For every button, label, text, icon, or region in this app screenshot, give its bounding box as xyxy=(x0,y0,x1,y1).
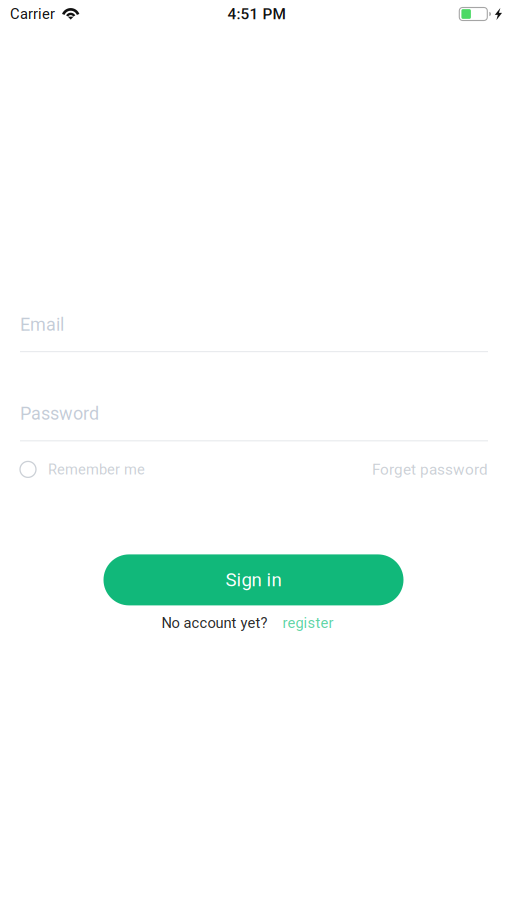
button[interactable]: Remember me xyxy=(20,454,145,484)
staticText: No account yet? xyxy=(161,614,267,632)
staticText: 4:51 PM xyxy=(227,5,285,23)
staticText: register xyxy=(282,614,333,632)
staticText: Carrier xyxy=(10,5,55,23)
staticText: Password xyxy=(20,403,99,424)
staticText: Sign in xyxy=(225,569,281,591)
button[interactable]: Forget password xyxy=(372,454,488,484)
button[interactable]: Sign in xyxy=(103,554,403,605)
staticText: Remember me xyxy=(48,461,145,478)
staticText: Forget password xyxy=(372,460,488,478)
staticText: Email xyxy=(20,314,64,335)
button[interactable]: register xyxy=(282,614,333,632)
